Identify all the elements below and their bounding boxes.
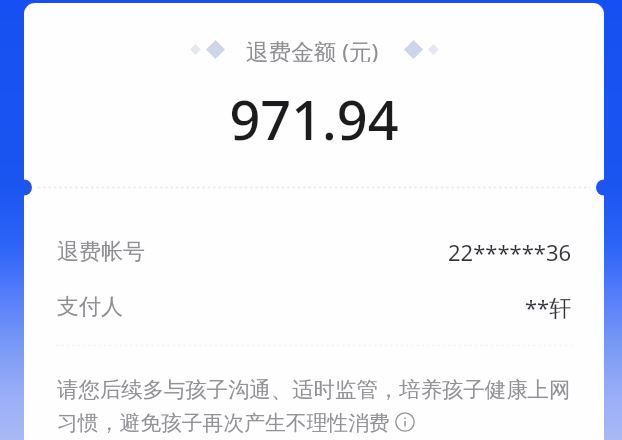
button[interactable]: More information <box>395 412 415 432</box>
staticText: 退费金额 (元) <box>246 36 379 62</box>
staticText: 971.94 <box>24 82 604 156</box>
staticText: 退费帐号 <box>57 238 145 266</box>
staticText: 支付人 <box>57 293 123 321</box>
staticText: 22******36 <box>448 237 572 267</box>
staticText: 习惯，避免孩子再次产生不理性消费 <box>57 410 390 436</box>
staticText: **轩 <box>525 292 572 322</box>
staticText: 请您后续多与孩子沟通、适时监管，培养孩子健康上网 <box>57 376 571 403</box>
button[interactable]: 支付人 <box>57 289 572 325</box>
button[interactable]: 退费帐号 <box>57 234 572 270</box>
